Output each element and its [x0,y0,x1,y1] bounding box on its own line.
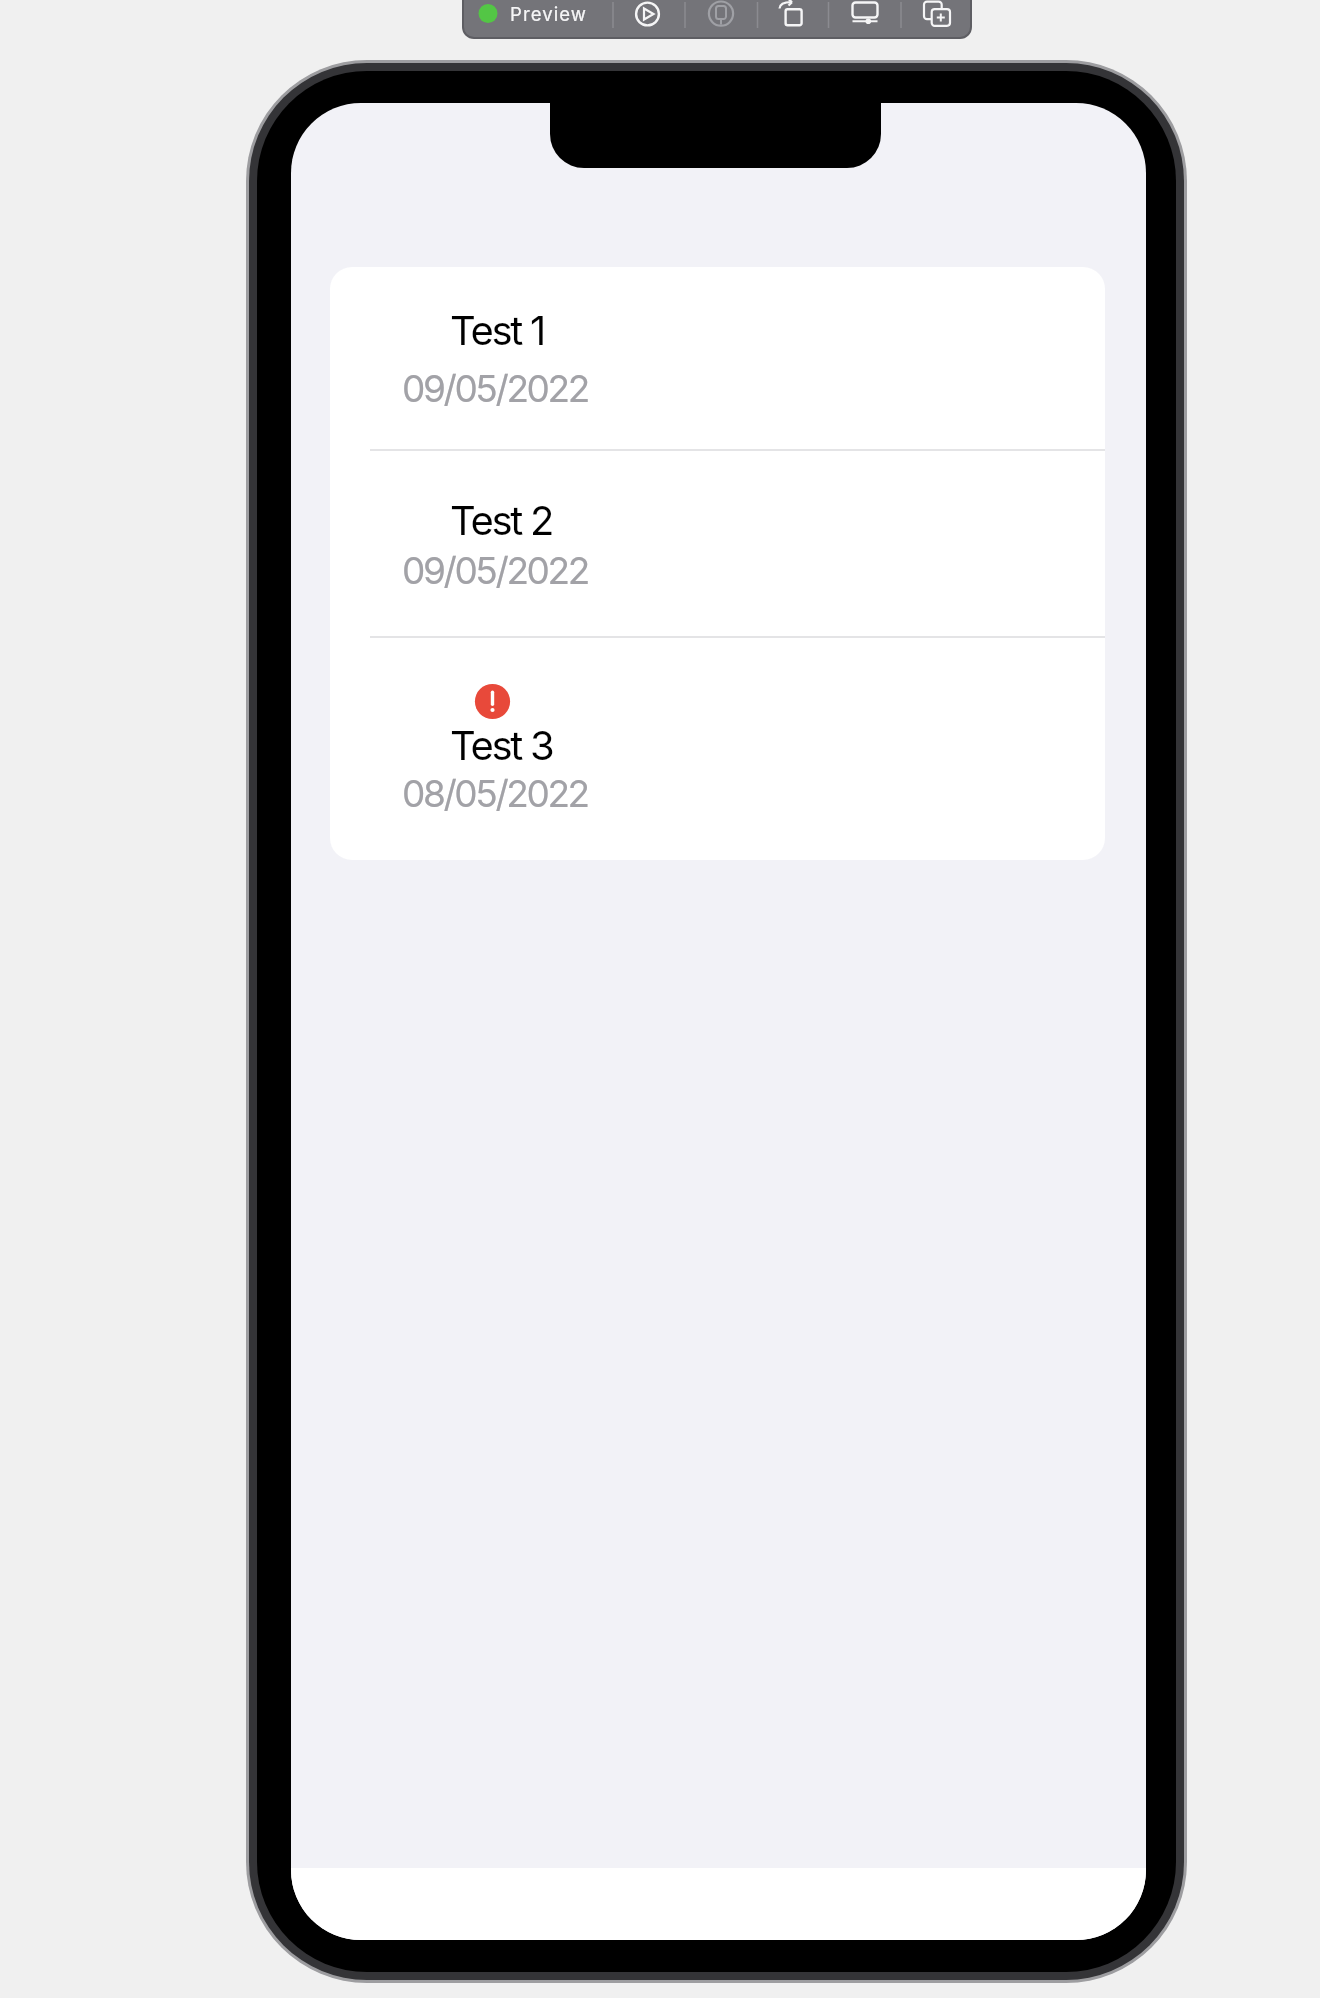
button[interactable] [620,0,675,37]
button[interactable] [838,0,893,37]
button[interactable]: Test 1 [330,267,1105,449]
button[interactable] [910,0,965,37]
staticText: Preview [510,3,588,25]
button[interactable]: Preview [472,0,602,37]
staticText: Test 1 [450,306,544,354]
staticText: Test 2 [450,496,553,544]
staticText: Test 3 [450,721,553,769]
button[interactable]: Test 3 [330,638,1105,860]
staticText: 08/05/2022 [402,771,588,816]
button[interactable] [766,0,821,37]
staticText: 09/05/2022 [402,366,588,411]
button[interactable] [694,0,749,37]
button[interactable]: Test 2 [330,451,1105,636]
staticText: 09/05/2022 [402,548,588,593]
